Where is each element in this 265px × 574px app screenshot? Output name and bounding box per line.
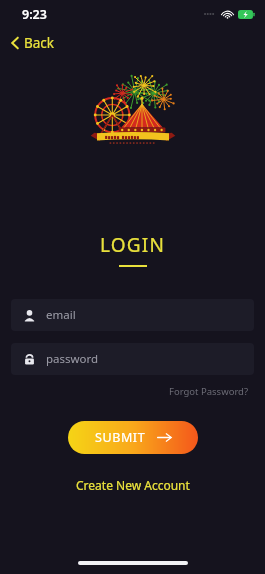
button[interactable]: email [11,299,254,331]
staticText: SUBMIT [95,429,146,446]
staticText: Back [24,34,55,52]
staticText: email [46,307,76,323]
staticText: password [46,351,99,367]
staticText: Forgot Password? [169,385,249,398]
button[interactable]: Forgot Password? [167,383,251,400]
button[interactable]: SUBMIT [68,421,198,454]
staticText: LOGIN [100,232,166,258]
button[interactable]: password [11,343,254,375]
button[interactable]: Create New Account [70,474,196,496]
button[interactable]: Back [6,28,63,58]
staticText: Create New Account [76,477,190,493]
staticText: 9:23 [22,6,47,23]
